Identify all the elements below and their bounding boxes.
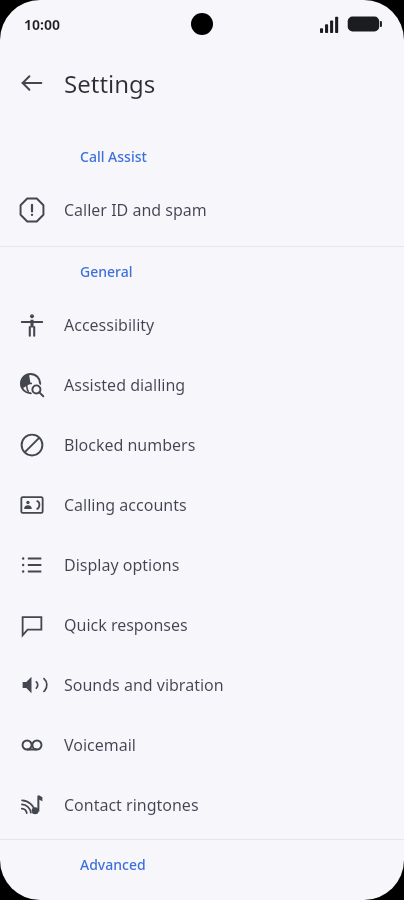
button[interactable]: Accessibility (0, 295, 404, 355)
button[interactable]: Caller ID and spam (0, 180, 404, 240)
button[interactable]: Display options (0, 535, 404, 595)
button[interactable]: Back (0, 48, 64, 118)
staticText: Accessibility (64, 314, 155, 336)
staticText: Contact ringtones (64, 794, 199, 816)
staticText: General (80, 262, 133, 281)
button[interactable]: Contact ringtones (0, 775, 404, 835)
staticText: Display options (64, 554, 180, 576)
staticText: Quick responses (64, 614, 188, 636)
button[interactable]: Voicemail (0, 715, 404, 775)
staticText: Assisted dialling (64, 374, 186, 396)
staticText: Sounds and vibration (64, 674, 224, 696)
button[interactable]: Quick responses (0, 595, 404, 655)
button[interactable]: Blocked numbers (0, 415, 404, 475)
button[interactable]: Sounds and vibration (0, 655, 404, 715)
staticText: 10:00 (24, 15, 60, 34)
button[interactable]: Assisted dialling (0, 355, 404, 415)
button[interactable]: Calling accounts (0, 475, 404, 535)
staticText: Voicemail (64, 734, 136, 756)
staticText: Calling accounts (64, 494, 187, 516)
staticText: Call Assist (80, 147, 147, 166)
staticText: Settings (64, 67, 156, 100)
staticText: Blocked numbers (64, 434, 196, 456)
staticText: Advanced (80, 855, 146, 874)
staticText: Caller ID and spam (64, 199, 207, 221)
